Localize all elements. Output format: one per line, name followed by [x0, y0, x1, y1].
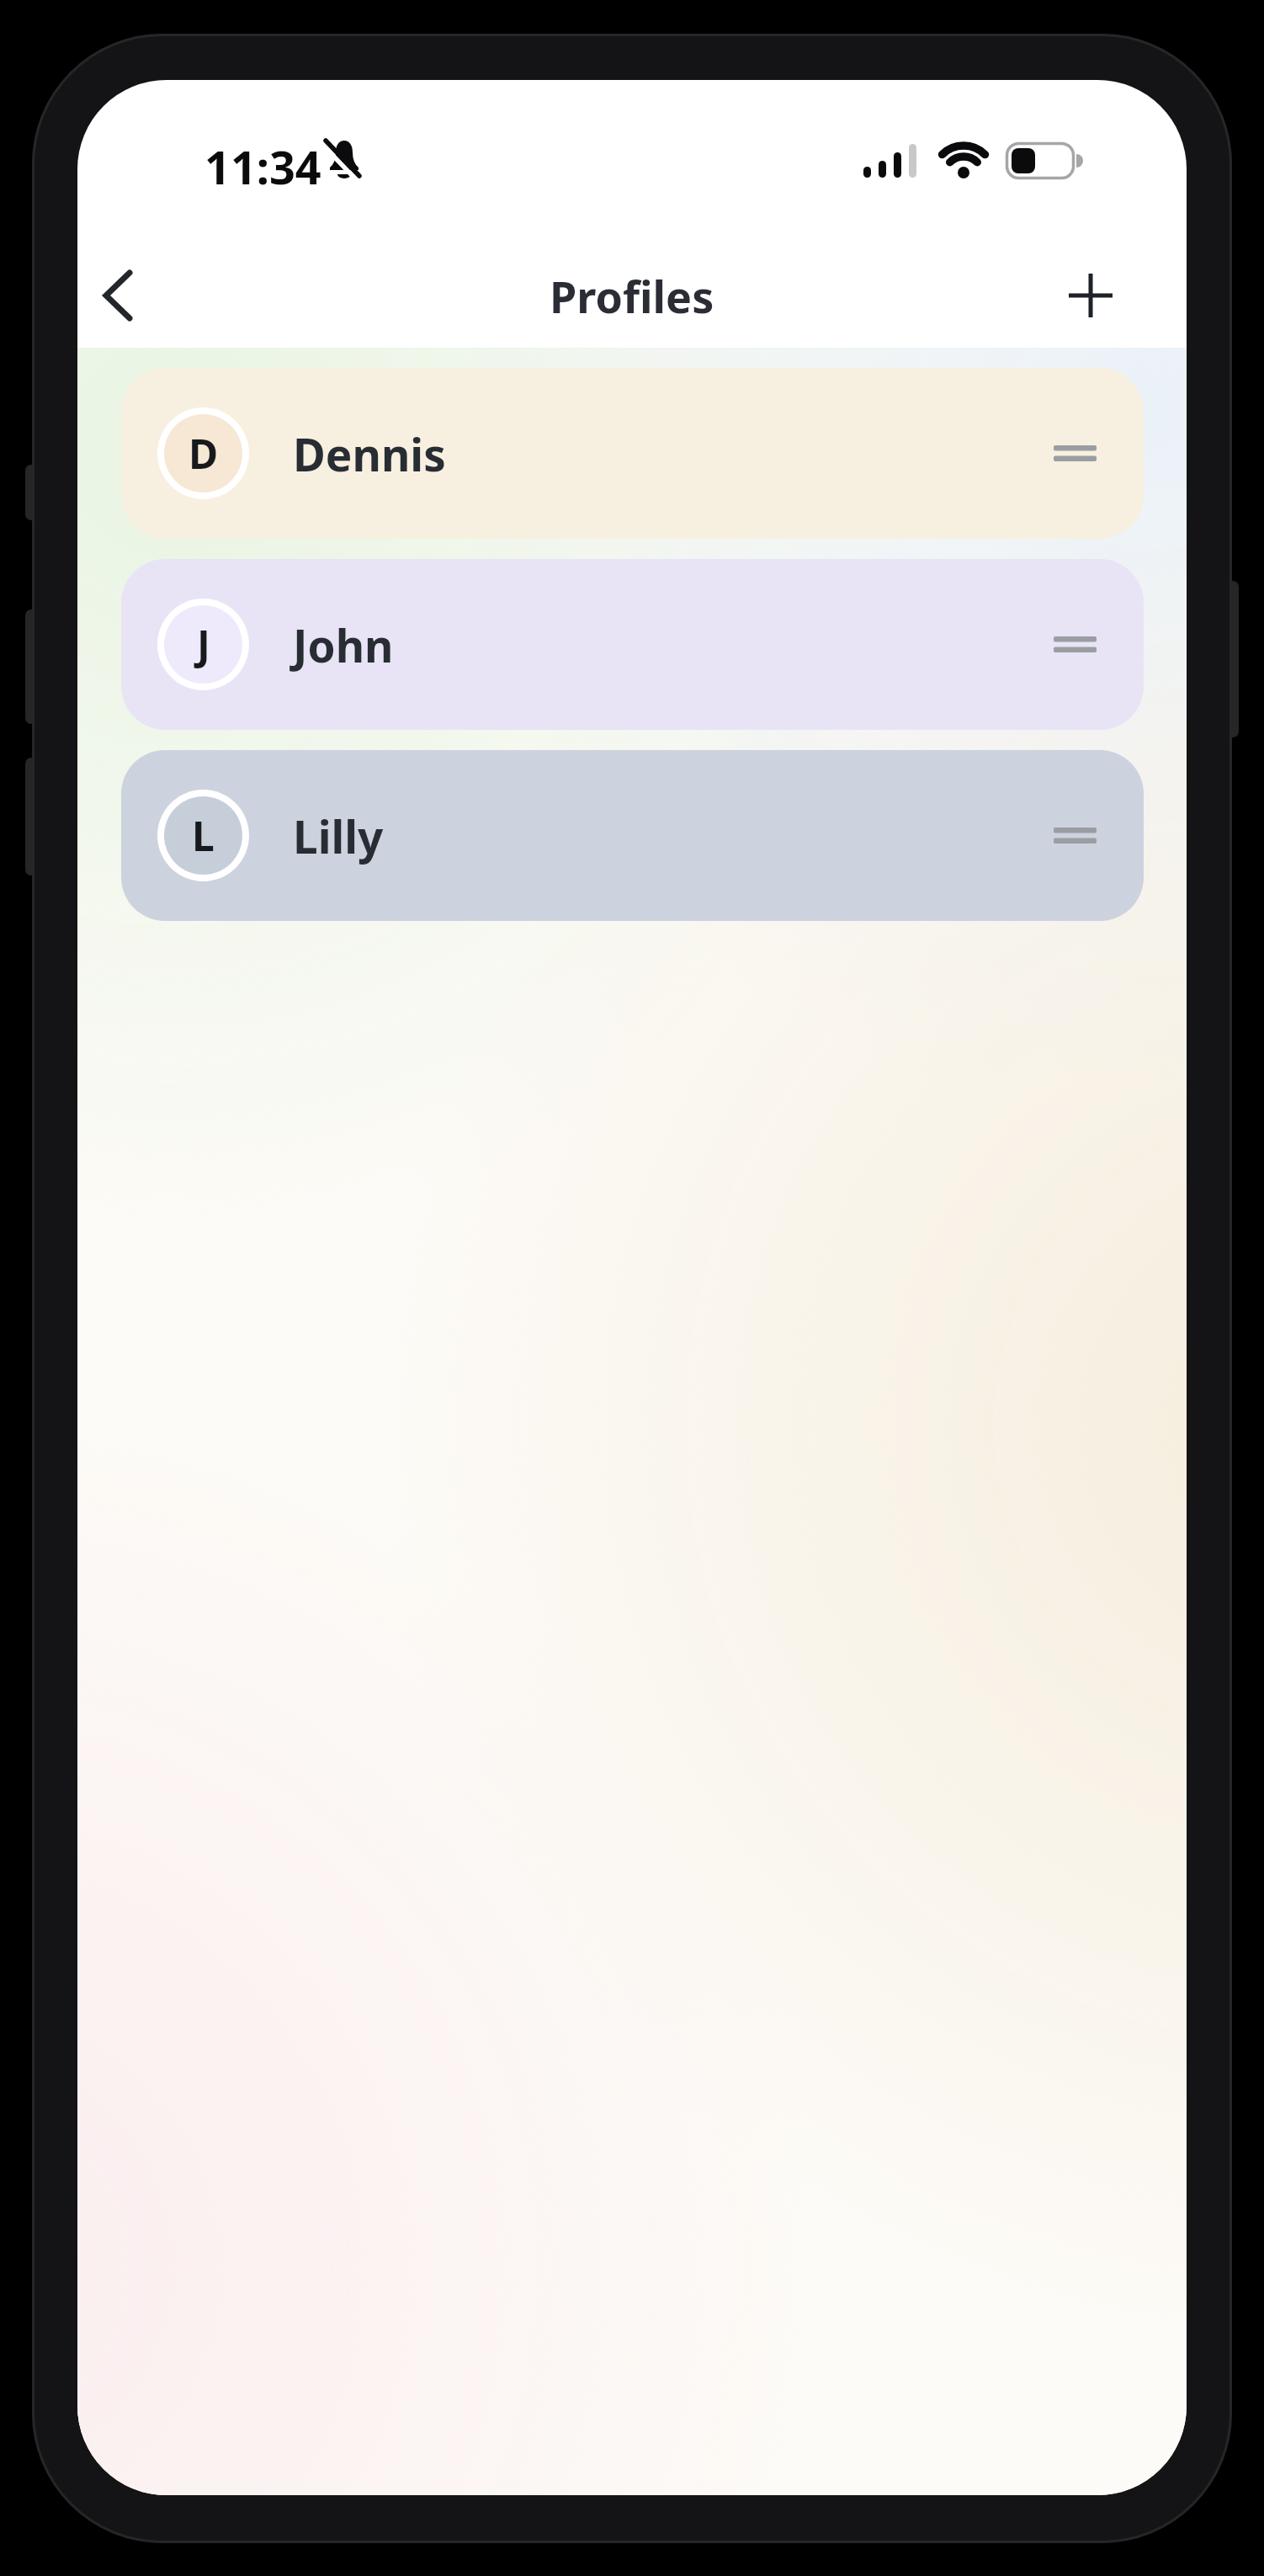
button[interactable]: D: [121, 368, 1144, 539]
staticText: John: [293, 615, 394, 675]
button[interactable]: J: [121, 559, 1144, 730]
button[interactable]: L: [121, 750, 1144, 921]
staticText: Profiles: [550, 266, 714, 326]
staticText: Lilly: [293, 806, 384, 866]
staticText: 11:34: [204, 136, 321, 188]
staticText: D: [189, 426, 219, 481]
button[interactable]: [86, 258, 150, 333]
staticText: Dennis: [293, 423, 446, 484]
staticText: L: [192, 808, 215, 863]
button[interactable]: [1052, 258, 1129, 333]
staticText: J: [197, 617, 210, 672]
